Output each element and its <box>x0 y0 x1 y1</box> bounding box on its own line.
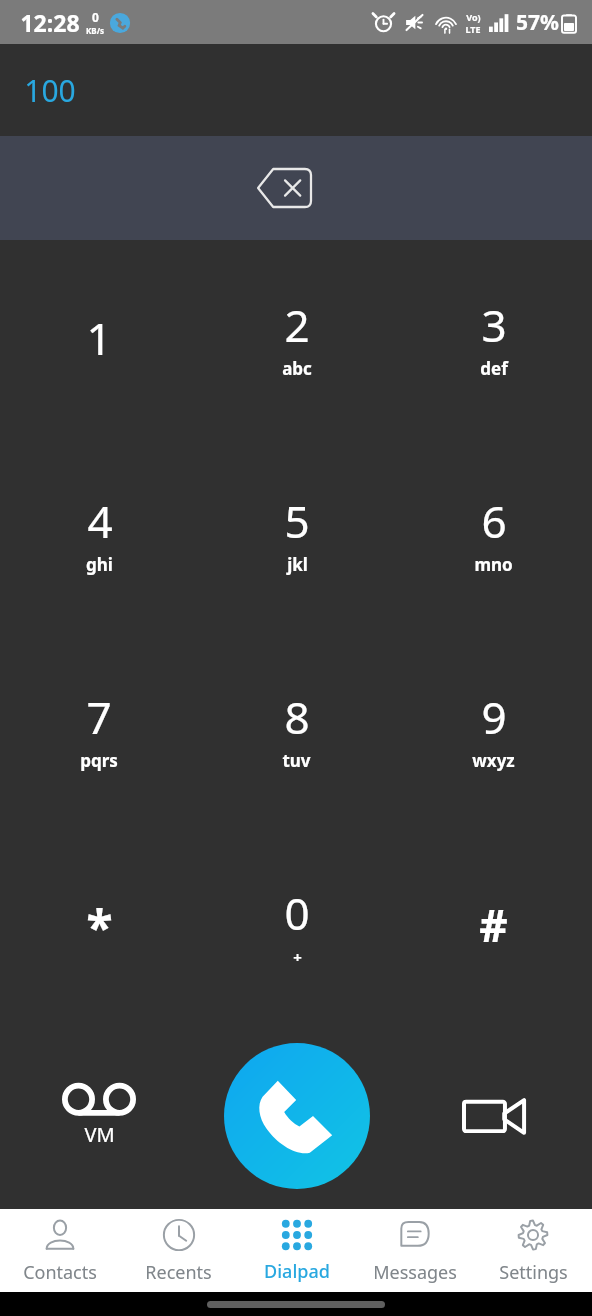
button[interactable]: 0 <box>198 827 395 1023</box>
button[interactable]: # <box>395 827 592 1023</box>
staticText: Recents <box>145 1260 212 1285</box>
staticText: 1 <box>86 308 112 368</box>
staticText: 57% <box>516 8 559 37</box>
staticText: 4 <box>87 491 113 551</box>
button[interactable]: 8 <box>198 631 395 827</box>
staticText: 0 <box>284 883 310 943</box>
staticText: 3 <box>481 295 507 355</box>
staticText: 2 <box>284 295 310 355</box>
button[interactable]: Voicemail <box>0 1023 198 1209</box>
button[interactable]: * <box>0 827 198 1023</box>
staticText: tuv <box>282 749 311 772</box>
staticText: LTE <box>465 23 481 35</box>
staticText: Messages <box>373 1260 457 1285</box>
staticText: + <box>293 947 302 967</box>
button[interactable]: 2 <box>198 240 395 435</box>
button[interactable]: 3 <box>395 240 592 435</box>
staticText: Vo) <box>466 11 481 23</box>
staticText: 5 <box>284 491 310 551</box>
staticText: def <box>480 357 508 380</box>
button[interactable]: Backspace <box>252 156 316 220</box>
button[interactable]: Settings <box>474 1209 592 1292</box>
button[interactable]: Contacts <box>0 1209 119 1292</box>
button[interactable]: 4 <box>0 435 198 631</box>
staticText: KB/s <box>86 25 104 36</box>
staticText: * <box>86 894 113 956</box>
staticText: 6 <box>481 491 507 551</box>
staticText: 9 <box>481 687 507 747</box>
button[interactable]: Call <box>224 1043 370 1189</box>
button[interactable]: Recents <box>119 1209 238 1292</box>
staticText: 0 <box>92 9 99 25</box>
button[interactable]: Video call <box>395 1023 592 1209</box>
staticText: mno <box>474 553 513 576</box>
button[interactable]: 1 <box>0 240 198 435</box>
staticText: Dialpad <box>264 1259 330 1284</box>
staticText: jkl <box>287 553 308 576</box>
staticText: 12:28 <box>20 7 80 38</box>
staticText: VM <box>84 1121 115 1148</box>
button[interactable]: Messages <box>356 1209 474 1292</box>
button[interactable]: Dialpad <box>238 1209 356 1292</box>
staticText: ghi <box>86 553 113 576</box>
button[interactable]: 5 <box>198 435 395 631</box>
staticText: 100 <box>24 70 76 111</box>
staticText: abc <box>282 357 312 380</box>
button[interactable]: 7 <box>0 631 198 827</box>
button[interactable]: 6 <box>395 435 592 631</box>
staticText: 8 <box>284 687 310 747</box>
staticText: Settings <box>499 1260 568 1285</box>
staticText: # <box>479 895 508 955</box>
staticText: Contacts <box>23 1260 97 1285</box>
staticText: pqrs <box>80 749 118 772</box>
staticText: 7 <box>86 687 112 747</box>
staticText: wxyz <box>472 749 515 772</box>
button[interactable]: 9 <box>395 631 592 827</box>
